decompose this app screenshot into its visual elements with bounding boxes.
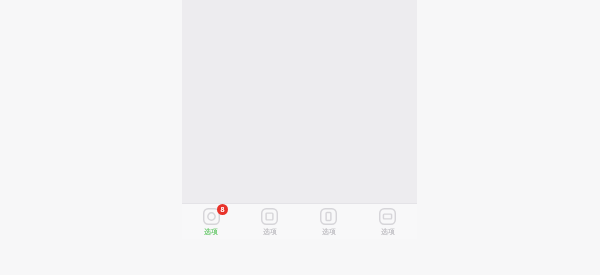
button[interactable]: 选项 [358, 204, 417, 239]
staticText: 选项 [322, 227, 336, 236]
button[interactable]: 选项 [240, 204, 299, 239]
staticText: 选项 [381, 227, 395, 236]
staticText: 8 [220, 205, 225, 215]
staticText: 选项 [204, 227, 218, 236]
staticText: 选项 [263, 227, 277, 236]
button[interactable]: 选项 [299, 204, 358, 239]
button[interactable]: 选项 [182, 204, 240, 239]
